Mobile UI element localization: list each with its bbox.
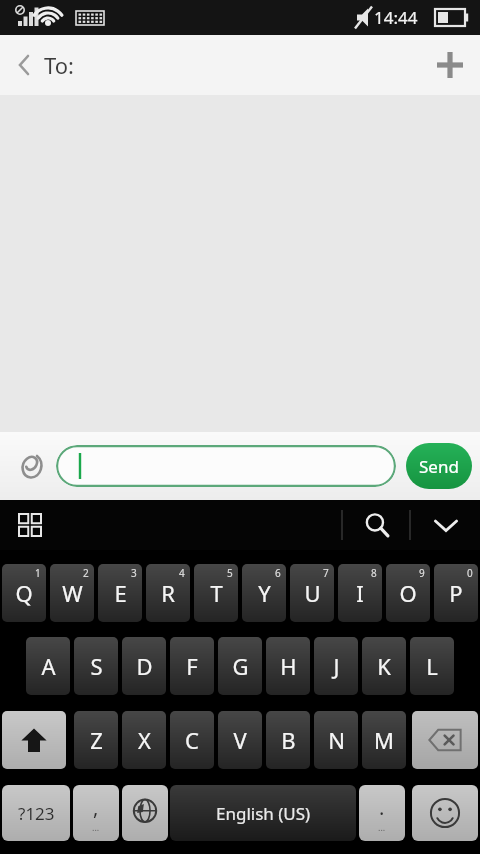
staticText: 3 — [131, 566, 137, 580]
staticText: To: — [44, 50, 74, 80]
button[interactable]: Keyboard menu — [8, 503, 52, 547]
button[interactable]: U — [290, 564, 334, 622]
button[interactable]: K — [362, 637, 406, 695]
button[interactable]: Shift — [2, 711, 66, 769]
button[interactable]: B — [266, 711, 310, 769]
staticText: F — [186, 651, 198, 681]
button[interactable]: Attach — [8, 442, 56, 490]
staticText: S — [90, 651, 103, 681]
button[interactable]: Period — [359, 785, 405, 841]
staticText: 1 — [35, 566, 41, 580]
button[interactable]: P — [434, 564, 478, 622]
staticText: E — [114, 578, 127, 608]
button[interactable]: Q — [2, 564, 46, 622]
button[interactable]: X — [122, 711, 166, 769]
staticText: D — [136, 651, 153, 681]
staticText: W — [62, 578, 83, 608]
button[interactable] — [56, 445, 396, 487]
staticText: 6 — [275, 566, 281, 580]
button[interactable]: Comma — [73, 785, 119, 841]
staticText: V — [233, 725, 247, 755]
staticText: , — [93, 794, 99, 821]
staticText: 9 — [419, 566, 425, 580]
button[interactable]: N — [314, 711, 358, 769]
button[interactable]: I — [338, 564, 382, 622]
staticText: C — [185, 725, 199, 755]
button[interactable]: V — [218, 711, 262, 769]
button[interactable]: Hide keyboard — [424, 503, 468, 547]
button[interactable]: D — [122, 637, 166, 695]
button[interactable]: G — [218, 637, 262, 695]
staticText: K — [377, 651, 391, 681]
staticText: ... — [378, 821, 386, 833]
button[interactable]: H — [266, 637, 310, 695]
staticText: X — [138, 725, 151, 755]
staticText: 14:44 — [374, 6, 418, 29]
button[interactable]: Back — [0, 43, 44, 87]
button[interactable]: Send — [406, 443, 472, 489]
button[interactable]: T — [194, 564, 238, 622]
staticText: Z — [90, 725, 103, 755]
staticText: J — [333, 651, 340, 681]
button[interactable]: English (US) — [170, 785, 356, 841]
button[interactable]: J — [314, 637, 358, 695]
staticText: B — [281, 725, 296, 755]
button[interactable]: M — [362, 711, 406, 769]
staticText: G — [232, 651, 249, 681]
staticText: Q — [15, 578, 33, 608]
staticText: . — [379, 794, 385, 821]
button[interactable]: Search — [355, 503, 399, 547]
button[interactable]: E — [98, 564, 142, 622]
staticText: A — [41, 651, 56, 681]
staticText: 4 — [179, 566, 185, 580]
staticText: English (US) — [216, 802, 311, 825]
button[interactable]: W — [50, 564, 94, 622]
staticText: 5 — [227, 566, 233, 580]
button[interactable]: A — [26, 637, 70, 695]
staticText: L — [426, 651, 438, 681]
staticText: 2 — [83, 566, 89, 580]
staticText: N — [328, 725, 345, 755]
button[interactable]: Backspace — [412, 711, 478, 769]
staticText: ?123 — [18, 802, 55, 825]
staticText: I — [356, 578, 364, 608]
button[interactable]: C — [170, 711, 214, 769]
button[interactable]: Change language — [122, 785, 168, 841]
button[interactable]: Z — [74, 711, 118, 769]
button[interactable]: F — [170, 637, 214, 695]
staticText: O — [399, 578, 417, 608]
button[interactable]: Add recipient — [424, 37, 480, 93]
button[interactable]: S — [74, 637, 118, 695]
staticText: 8 — [371, 566, 377, 580]
button[interactable]: Symbols — [2, 785, 70, 841]
staticText: H — [280, 651, 297, 681]
staticText: 0 — [467, 566, 473, 580]
staticText: R — [161, 578, 175, 608]
button[interactable]: O — [386, 564, 430, 622]
staticText: Y — [258, 578, 271, 608]
button[interactable]: L — [410, 637, 454, 695]
staticText: P — [449, 578, 463, 608]
staticText: 7 — [323, 566, 329, 580]
staticText: Send — [419, 455, 459, 478]
staticText: U — [304, 578, 321, 608]
staticText: M — [374, 725, 394, 755]
button[interactable]: Y — [242, 564, 286, 622]
button[interactable]: R — [146, 564, 190, 622]
staticText: T — [210, 578, 223, 608]
staticText: ... — [92, 821, 100, 833]
button[interactable]: Emoji — [412, 785, 478, 841]
